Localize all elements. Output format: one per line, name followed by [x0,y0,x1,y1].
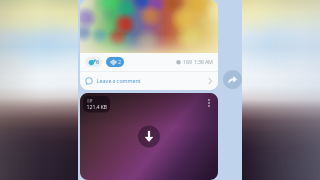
staticText: GIF [86,98,92,103]
button[interactable]: More options [203,96,215,110]
button[interactable]: Forward [223,70,242,89]
button[interactable]: Leave a comment [80,72,218,90]
staticText: 121.4 KB [86,103,106,110]
button[interactable]: 6 [85,57,102,67]
button[interactable]: Download [138,125,160,147]
staticText: 2 [118,58,121,66]
staticText: 6 [96,58,99,66]
staticText: 1:36 AM [194,58,213,66]
staticText: Leave a comment [96,77,140,84]
button[interactable]: 2 [106,57,124,67]
staticText: 169 [183,58,192,66]
